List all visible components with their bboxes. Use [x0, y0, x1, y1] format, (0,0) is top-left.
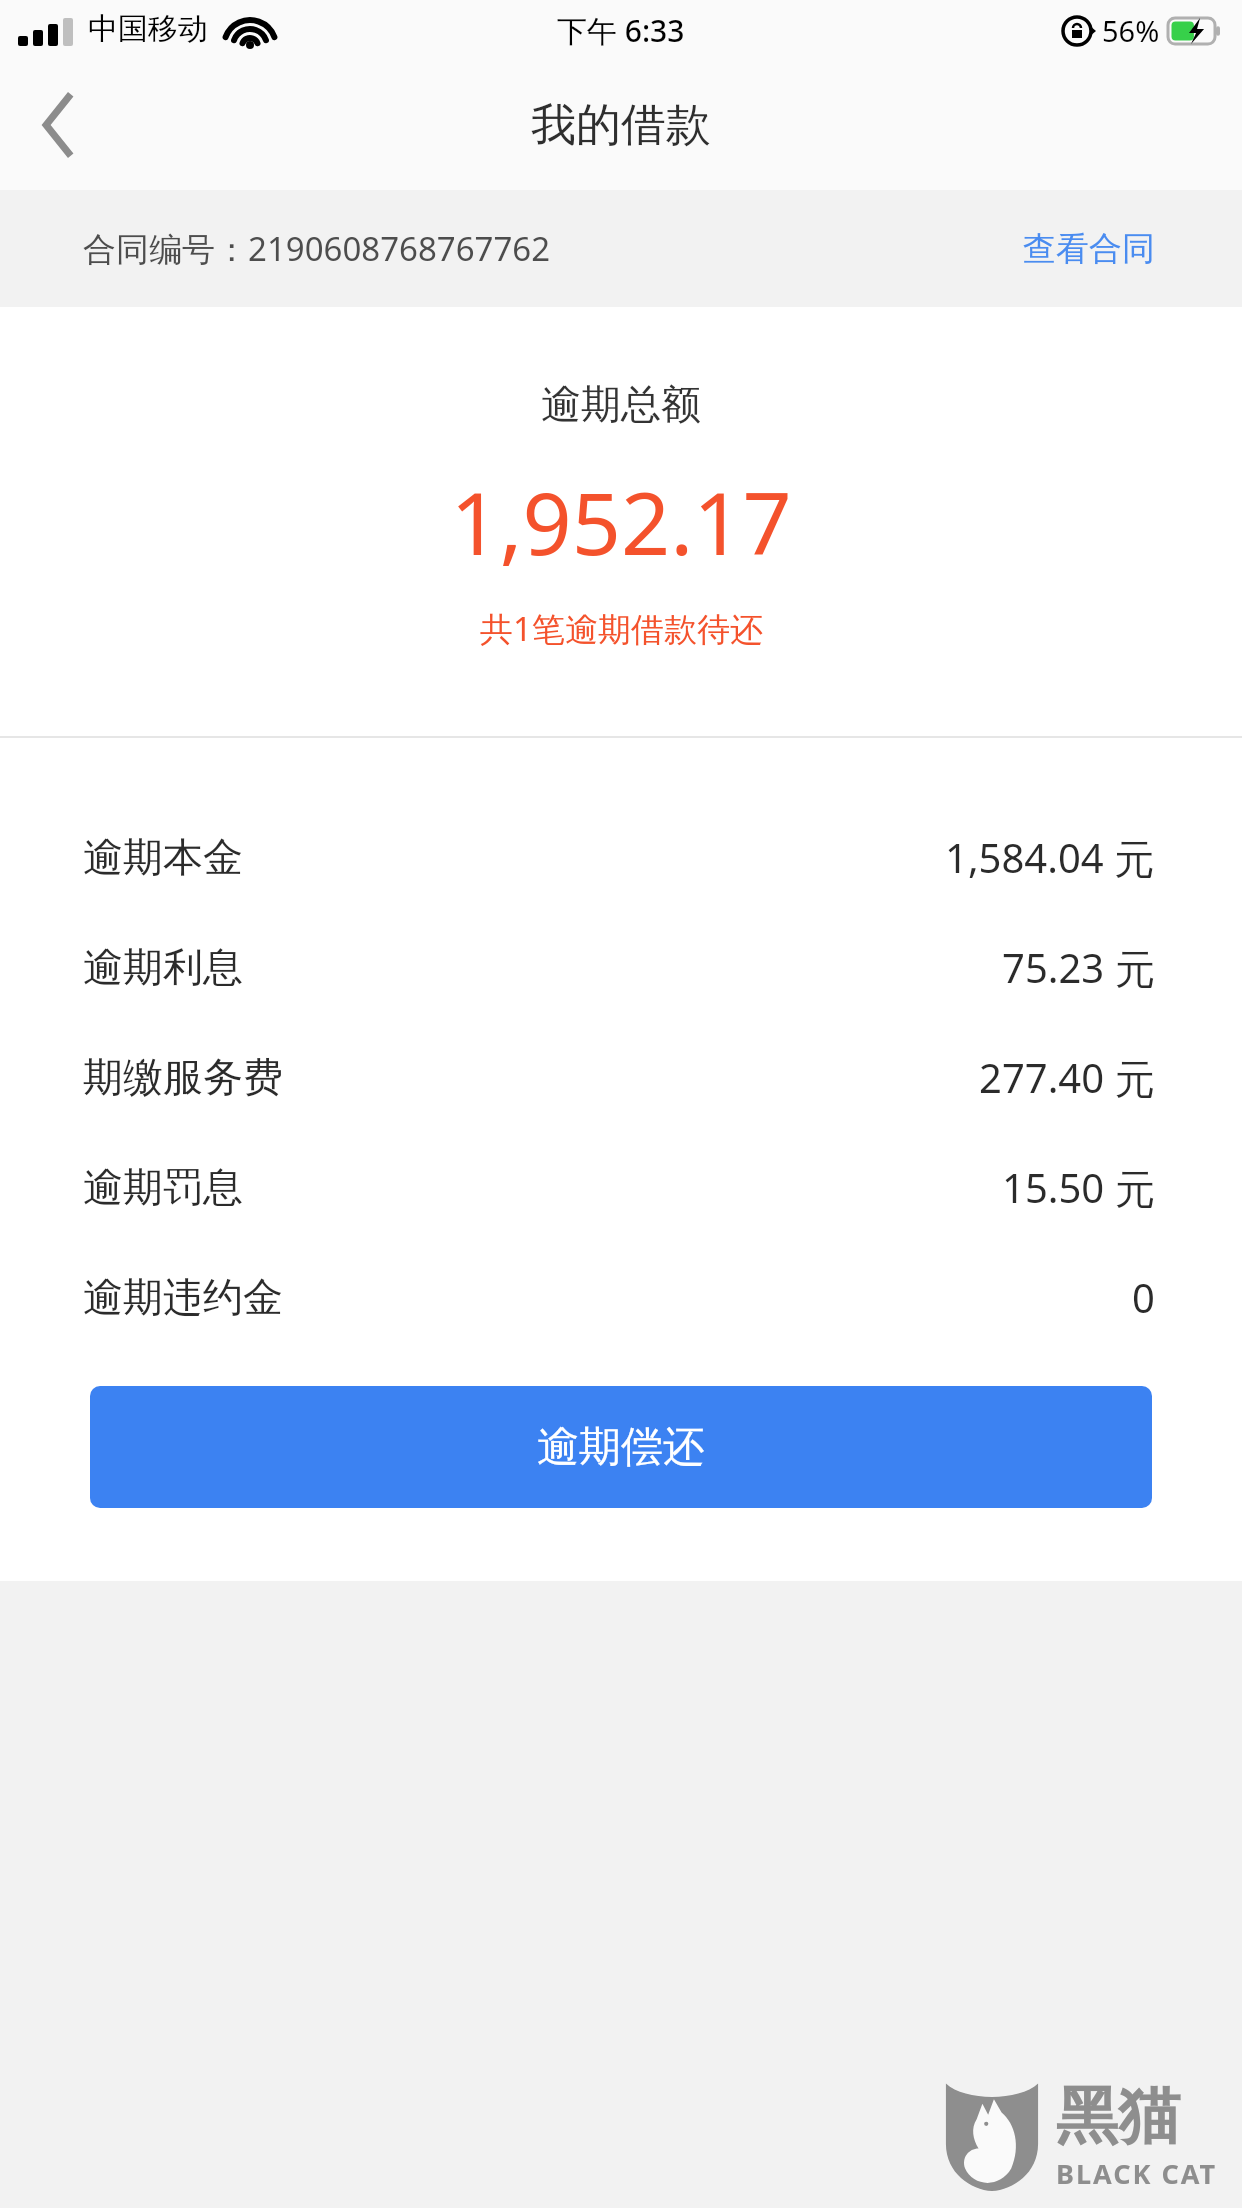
- staticText: 中国移动: [88, 10, 208, 48]
- staticText: 15.50 元: [1002, 1160, 1155, 1215]
- button[interactable]: 期缴服务费: [0, 1022, 1242, 1132]
- button[interactable]: 逾期利息: [0, 912, 1242, 1022]
- staticText: 逾期违约金: [83, 1272, 283, 1322]
- staticText: 1,952.17: [450, 463, 792, 580]
- staticText: 逾期偿还: [537, 1421, 705, 1474]
- button[interactable]: 逾期本金: [0, 802, 1242, 912]
- button[interactable]: 逾期罚息: [0, 1132, 1242, 1242]
- staticText: 1,584.04 元: [945, 830, 1155, 885]
- staticText: 56%: [1102, 11, 1160, 50]
- staticText: 0: [1132, 1270, 1155, 1324]
- staticText: BLACK CAT: [1056, 2155, 1218, 2192]
- staticText: 我的借款: [531, 97, 711, 154]
- staticText: 逾期总额: [541, 379, 701, 429]
- staticText: 75.23 元: [1002, 940, 1155, 995]
- staticText: 逾期罚息: [83, 1162, 243, 1212]
- staticText: 下午 6:33: [557, 10, 685, 51]
- staticText: 查看合同: [1023, 228, 1155, 270]
- button[interactable]: 逾期违约金: [0, 1242, 1242, 1352]
- button[interactable]: 逾期偿还: [90, 1386, 1152, 1508]
- staticText: 逾期利息: [83, 942, 243, 992]
- staticText: 逾期本金: [83, 832, 243, 882]
- staticText: 共1笔逾期借款待还: [480, 606, 763, 651]
- button[interactable]: Back: [0, 66, 118, 184]
- button[interactable]: 查看合同: [1019, 220, 1159, 278]
- staticText: 277.40 元: [979, 1050, 1155, 1105]
- staticText: 黑猫: [1056, 2077, 1180, 2155]
- staticText: 合同编号：2190608768767762: [83, 226, 551, 271]
- staticText: 期缴服务费: [83, 1052, 283, 1102]
